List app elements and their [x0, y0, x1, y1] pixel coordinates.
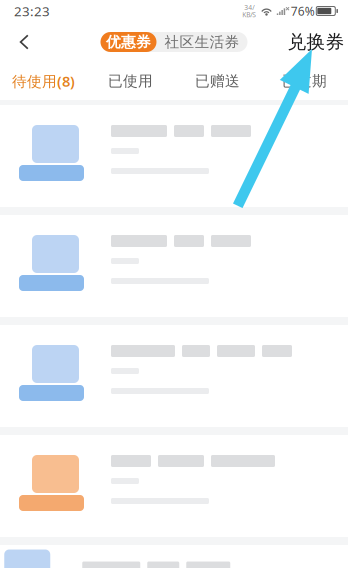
- staticText: 社区生活券: [164, 33, 239, 51]
- staticText: 已赠送: [195, 72, 240, 90]
- button[interactable]: [0, 545, 348, 568]
- staticText: 待使用(8): [12, 71, 75, 91]
- button[interactable]: [0, 105, 348, 207]
- button[interactable]: [0, 435, 348, 537]
- button[interactable]: 已赠送: [174, 62, 261, 100]
- button[interactable]: 已使用: [87, 62, 174, 100]
- button[interactable]: 待使用(8): [0, 62, 87, 100]
- staticText: 23:23: [14, 2, 50, 20]
- button[interactable]: 已过期: [261, 62, 348, 100]
- button[interactable]: 返回: [0, 22, 48, 62]
- button[interactable]: 优惠券: [100, 32, 156, 52]
- staticText: 76%: [291, 3, 315, 19]
- staticText: KB/S: [242, 10, 256, 19]
- staticText: 优惠券: [106, 33, 151, 51]
- staticText: 34/: [244, 3, 254, 12]
- staticText: 兑换券: [287, 30, 344, 53]
- staticText: 已使用: [108, 72, 153, 90]
- button[interactable]: [0, 215, 348, 317]
- button[interactable]: [0, 325, 348, 427]
- button[interactable]: 社区生活券: [156, 32, 247, 52]
- button[interactable]: 兑换券: [284, 22, 348, 62]
- staticText: 已过期: [282, 72, 327, 90]
